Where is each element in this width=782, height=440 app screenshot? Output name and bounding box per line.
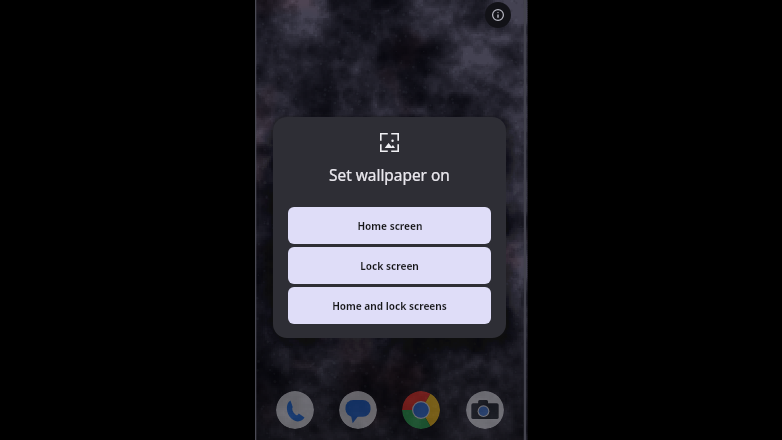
staticText: Home and lock screens [332,299,447,313]
button[interactable]: Home and lock screens [288,287,491,324]
button[interactable]: Camera [466,391,504,429]
button[interactable]: Chrome [402,391,440,429]
button[interactable]: Wallpaper info [485,2,511,28]
staticText: Set wallpaper on [329,165,450,186]
button[interactable]: Home screen [288,207,491,244]
staticText: Lock screen [360,259,419,273]
button[interactable]: Lock screen [288,247,491,284]
button[interactable]: Messages [339,391,377,429]
button[interactable]: Phone [276,391,314,429]
staticText: Home screen [357,219,423,233]
